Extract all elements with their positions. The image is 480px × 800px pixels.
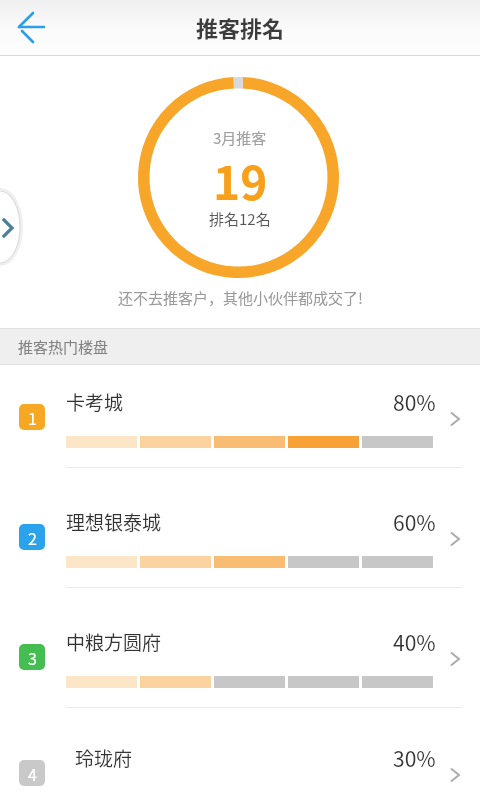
staticText: 还不去推客户，其他小伙伴都成交了! bbox=[118, 287, 363, 309]
staticText: 1 bbox=[28, 406, 37, 429]
staticText: 4 bbox=[28, 762, 37, 785]
staticText: 80% bbox=[393, 387, 436, 417]
staticText: 30% bbox=[393, 743, 436, 773]
button[interactable]: 4 bbox=[0, 736, 480, 800]
staticText: 19 bbox=[213, 147, 268, 207]
staticText: 40% bbox=[393, 627, 436, 657]
staticText: 排名12名 bbox=[209, 208, 271, 230]
staticText: 推客排名 bbox=[196, 11, 285, 43]
button[interactable]: 1 bbox=[0, 380, 480, 500]
button[interactable]: 2 bbox=[0, 500, 480, 620]
staticText: 推客热门楼盘 bbox=[18, 336, 109, 358]
staticText: 卡考城 bbox=[66, 388, 124, 416]
staticText: 3 bbox=[28, 646, 37, 669]
button[interactable] bbox=[0, 191, 20, 263]
staticText: 中粮方圆府 bbox=[66, 628, 162, 656]
staticText: 理想银泰城 bbox=[66, 508, 162, 536]
button[interactable] bbox=[0, 0, 56, 56]
staticText: 2 bbox=[28, 526, 37, 549]
staticText: 3月推客 bbox=[213, 127, 267, 149]
staticText: 玲珑府 bbox=[75, 744, 133, 772]
button[interactable]: 3 bbox=[0, 620, 480, 740]
staticText: 60% bbox=[393, 507, 436, 537]
